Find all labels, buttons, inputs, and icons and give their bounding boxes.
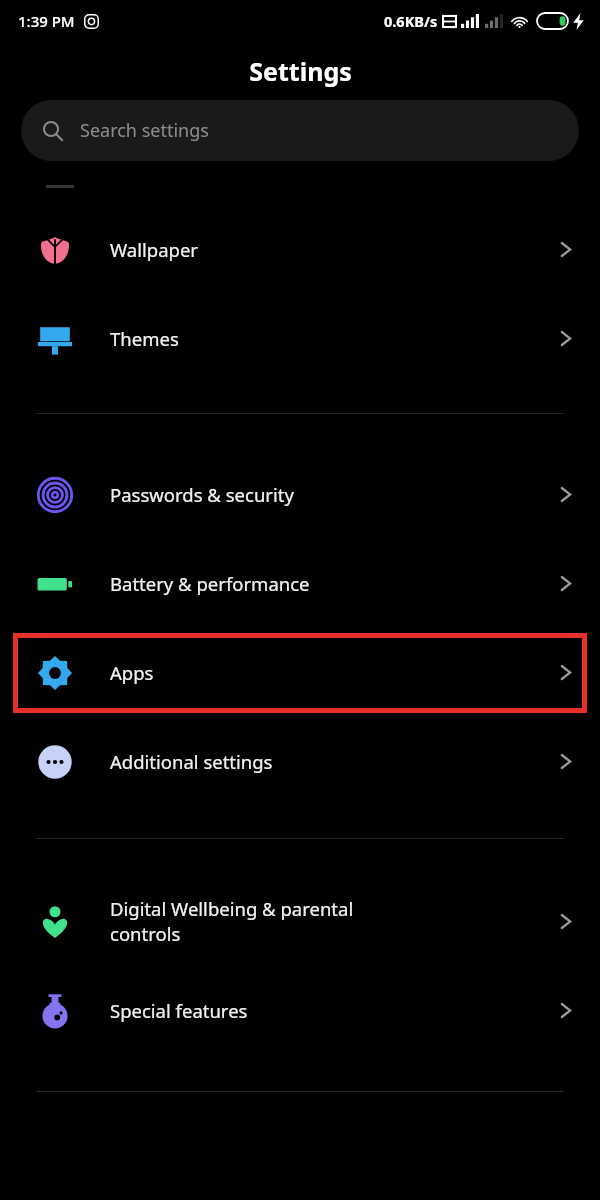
button[interactable]: Battery & performance — [0, 539, 600, 628]
button[interactable]: Additional settings — [0, 717, 600, 806]
staticText: Digital Wellbeing & parental controls — [110, 896, 559, 947]
staticText: Additional settings — [110, 749, 559, 774]
staticText: Settings — [249, 54, 352, 88]
staticText: Themes — [110, 326, 559, 351]
button[interactable]: Digital Wellbeing & parental controls — [0, 877, 600, 966]
button[interactable]: Apps — [0, 628, 600, 717]
button[interactable]: Search settings — [21, 100, 579, 161]
staticText: Wallpaper — [110, 237, 559, 262]
staticText: Apps — [110, 660, 559, 685]
button[interactable]: Themes — [0, 294, 600, 383]
staticText: Search settings — [80, 118, 209, 143]
staticText: Special features — [110, 998, 559, 1023]
staticText: Passwords & security — [110, 482, 559, 507]
staticText: 0.6KB/s — [384, 11, 438, 31]
button[interactable]: Wallpaper — [0, 205, 600, 294]
staticText: Battery & performance — [110, 571, 559, 596]
button[interactable]: Special features — [0, 966, 600, 1055]
button[interactable]: Passwords & security — [0, 450, 600, 539]
staticText: 1:39 PM — [18, 11, 75, 31]
